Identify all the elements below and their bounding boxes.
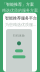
staticText: 为您精选优质服务方案 [5,22,37,27]
staticText: 扫码体验 [13,34,25,37]
staticText: 「智能推荐」方案 [2,2,34,7]
staticText: 智能推荐服务平台 [5,16,37,21]
staticText: 精选优质的服务方案 [2,8,38,13]
